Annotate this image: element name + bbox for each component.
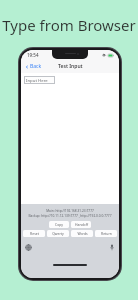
button[interactable]: Reset [23, 230, 45, 237]
staticText: Input Here [26, 77, 48, 83]
staticText: Type from Browser [0, 15, 138, 35]
button[interactable]: Switch keyboard language [24, 243, 33, 252]
button[interactable]: Dictate with microphone [107, 243, 116, 252]
staticText: Handoff [75, 222, 88, 227]
staticText: Backup: http://10.11.12.139:7777 , http:… [23, 214, 117, 218]
staticText: Test Input [58, 63, 83, 70]
staticText: Qwerty [52, 231, 64, 236]
staticText: Back [30, 63, 42, 70]
button[interactable]: Qwerty [47, 230, 69, 237]
button[interactable]: Back [24, 61, 43, 72]
staticText: Return [101, 231, 112, 236]
staticText: 19:54 [27, 52, 39, 58]
button[interactable]: Input Here [24, 76, 55, 84]
staticText: Words [77, 231, 88, 236]
button[interactable]: Copy [49, 221, 69, 228]
button[interactable]: Words [71, 230, 93, 237]
staticText: Copy [55, 222, 63, 227]
staticText: Main: http://192.168.31.23:7777 [46, 209, 94, 213]
button[interactable]: Return [95, 230, 117, 237]
staticText: Reset [30, 231, 39, 236]
button[interactable]: Handoff [71, 221, 91, 228]
